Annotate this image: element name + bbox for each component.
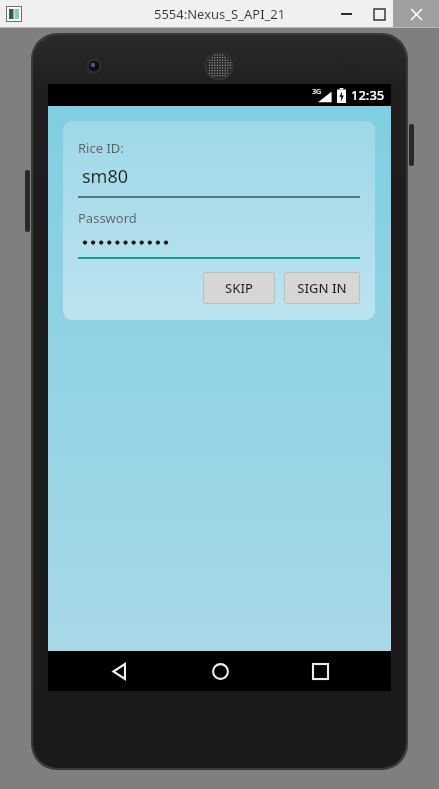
staticText: 3G (312, 87, 322, 97)
button[interactable]: SKIP (203, 272, 275, 304)
button[interactable] (78, 236, 360, 259)
staticText: SKIP (225, 279, 253, 297)
staticText: 12:35 (351, 86, 385, 104)
staticText: SIGN IN (297, 279, 347, 297)
staticText: Rice ID: (78, 139, 124, 157)
button[interactable]: Recent apps (291, 651, 349, 691)
button[interactable]: Back (90, 651, 148, 691)
button[interactable]: Minimize (331, 1, 361, 27)
button[interactable]: sm80 (78, 164, 360, 198)
button[interactable]: SIGN IN (284, 272, 360, 304)
button[interactable]: Home (191, 651, 249, 691)
staticText: sm80 (82, 164, 129, 189)
staticText: 5554:Nexus_S_API_21 (154, 5, 286, 23)
button[interactable]: Close (393, 0, 439, 28)
staticText: Password (78, 209, 137, 227)
button[interactable]: Maximize (364, 1, 394, 27)
